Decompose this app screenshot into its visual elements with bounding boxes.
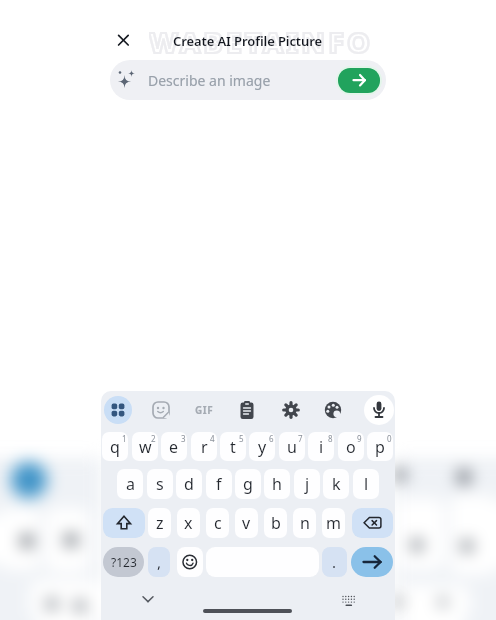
button[interactable] bbox=[134, 589, 162, 611]
button[interactable]: m bbox=[322, 508, 345, 538]
button[interactable]: , bbox=[148, 547, 170, 577]
button[interactable]: q bbox=[102, 432, 128, 461]
button[interactable]: w bbox=[132, 432, 158, 461]
staticText: 9 bbox=[357, 433, 362, 442]
button[interactable]: t bbox=[220, 432, 246, 461]
button[interactable]: i bbox=[308, 432, 334, 461]
staticText: ?123 bbox=[111, 554, 137, 570]
staticText: o bbox=[346, 436, 356, 458]
button[interactable]: j bbox=[294, 469, 320, 499]
button[interactable] bbox=[177, 547, 203, 577]
button[interactable] bbox=[351, 547, 393, 577]
button[interactable] bbox=[338, 68, 380, 93]
button[interactable]: ?123 bbox=[103, 547, 144, 577]
staticText: w bbox=[139, 436, 152, 458]
staticText: 3 bbox=[181, 433, 186, 442]
staticText: 4 bbox=[210, 433, 215, 442]
button[interactable]: u bbox=[279, 432, 305, 461]
staticText: v bbox=[242, 512, 251, 534]
staticText: . bbox=[332, 552, 337, 572]
button[interactable]: a bbox=[117, 469, 143, 499]
staticText: c bbox=[214, 512, 222, 534]
staticText: 2 bbox=[151, 433, 156, 442]
button[interactable]: p bbox=[367, 432, 393, 461]
staticText: r bbox=[201, 436, 208, 458]
staticText: Create AI Profile Picture bbox=[173, 32, 322, 50]
staticText: k bbox=[332, 473, 341, 495]
staticText: GIF bbox=[195, 403, 214, 417]
button[interactable]: l bbox=[353, 469, 379, 499]
button[interactable]: GIF bbox=[190, 399, 218, 421]
staticText: j bbox=[305, 473, 310, 495]
button[interactable]: x bbox=[177, 508, 200, 538]
staticText: n bbox=[300, 512, 310, 534]
staticText: 8 bbox=[328, 433, 333, 442]
staticText: a bbox=[126, 473, 135, 495]
button[interactable]: z bbox=[148, 508, 171, 538]
button[interactable] bbox=[104, 396, 132, 424]
button[interactable] bbox=[236, 399, 258, 421]
staticText: z bbox=[156, 512, 164, 534]
staticText: t bbox=[230, 436, 236, 458]
button[interactable] bbox=[364, 395, 394, 425]
staticText: m bbox=[326, 512, 341, 534]
staticText: l bbox=[364, 473, 369, 495]
button[interactable]: n bbox=[293, 508, 316, 538]
button[interactable]: e bbox=[161, 432, 187, 461]
staticText: f bbox=[216, 473, 222, 495]
staticText: WABETAINFO bbox=[149, 22, 373, 59]
staticText: x bbox=[184, 512, 193, 534]
staticText: i bbox=[319, 436, 324, 458]
button[interactable]: s bbox=[147, 469, 173, 499]
button[interactable] bbox=[280, 399, 302, 421]
staticText: p bbox=[375, 436, 385, 458]
button[interactable]: f bbox=[206, 469, 232, 499]
staticText: 1 bbox=[122, 433, 127, 442]
button[interactable] bbox=[109, 26, 138, 55]
button[interactable] bbox=[339, 592, 358, 609]
button[interactable]: v bbox=[235, 508, 258, 538]
staticText: 6 bbox=[269, 433, 274, 442]
button[interactable]: h bbox=[264, 469, 290, 499]
button[interactable]: . bbox=[322, 547, 347, 577]
button[interactable] bbox=[322, 399, 344, 421]
button[interactable]: d bbox=[176, 469, 202, 499]
staticText: d bbox=[184, 473, 194, 495]
staticText: Describe an image bbox=[148, 71, 271, 90]
button[interactable]: o bbox=[338, 432, 364, 461]
staticText: h bbox=[272, 473, 282, 495]
button[interactable]: Describe an image bbox=[110, 60, 386, 100]
button[interactable] bbox=[352, 508, 393, 538]
staticText: q bbox=[110, 436, 120, 458]
staticText: 0 bbox=[387, 433, 392, 442]
button[interactable]: g bbox=[235, 469, 261, 499]
button[interactable]: r bbox=[191, 432, 217, 461]
staticText: y bbox=[258, 436, 267, 458]
button[interactable] bbox=[103, 508, 145, 538]
staticText: , bbox=[157, 552, 162, 572]
staticText: g bbox=[243, 473, 253, 495]
staticText: s bbox=[156, 473, 164, 495]
button[interactable] bbox=[150, 399, 172, 421]
button[interactable]: c bbox=[206, 508, 229, 538]
staticText: b bbox=[271, 512, 281, 534]
staticText: u bbox=[287, 436, 297, 458]
staticText: 7 bbox=[298, 433, 303, 442]
button[interactable]: b bbox=[264, 508, 287, 538]
staticText: e bbox=[169, 436, 179, 458]
staticText: 5 bbox=[239, 433, 244, 442]
button[interactable]: k bbox=[323, 469, 349, 499]
button[interactable]: y bbox=[249, 432, 275, 461]
